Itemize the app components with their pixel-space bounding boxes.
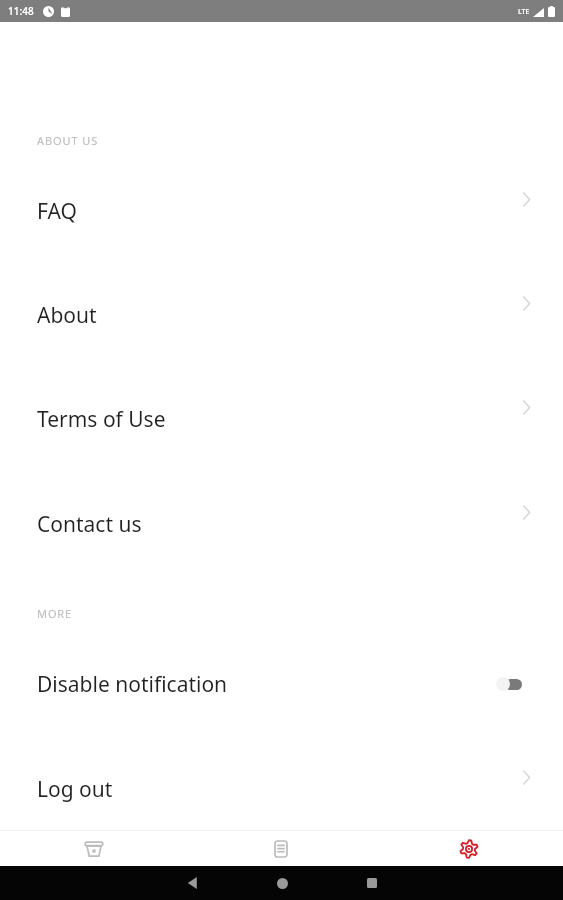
button[interactable]: Log out: [0, 770, 563, 808]
button[interactable]: Settings: [375, 831, 563, 866]
staticText: LTE: [518, 7, 530, 17]
staticText: Log out: [37, 775, 113, 804]
staticText: ABOUT US: [37, 133, 99, 148]
other: Disable notification toggle: [496, 676, 522, 692]
button[interactable]: Home: [254, 866, 310, 900]
staticText: About: [37, 301, 97, 330]
button[interactable]: Shop: [0, 831, 187, 866]
staticText: MORE: [37, 606, 73, 621]
staticText: Terms of Use: [37, 405, 166, 434]
staticText: 11:48: [8, 4, 34, 18]
staticText: Contact us: [37, 510, 142, 539]
button[interactable]: About: [0, 296, 563, 334]
button[interactable]: Orders: [187, 831, 375, 866]
staticText: FAQ: [37, 197, 77, 226]
button[interactable]: Back: [164, 866, 220, 900]
button[interactable]: Contact us: [0, 505, 563, 543]
staticText: Disable notification: [37, 670, 228, 699]
button[interactable]: Recents: [344, 866, 400, 900]
button[interactable]: Disable notification: [0, 665, 563, 703]
button[interactable]: FAQ: [0, 192, 563, 230]
button[interactable]: Terms of Use: [0, 400, 563, 438]
